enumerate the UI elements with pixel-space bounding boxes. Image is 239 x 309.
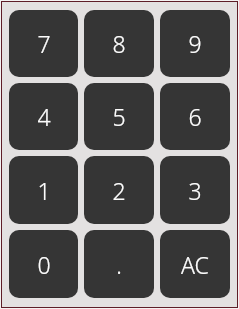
staticText: 6 (188, 101, 202, 132)
staticText: 1 (37, 175, 51, 206)
button[interactable]: 3 (160, 156, 230, 224)
staticText: 4 (37, 101, 51, 132)
staticText: 9 (188, 28, 202, 59)
button[interactable]: AC (160, 230, 230, 298)
staticText: 7 (37, 28, 51, 59)
staticText: . (116, 249, 122, 280)
staticText: AC (181, 249, 209, 280)
button[interactable]: 8 (84, 10, 154, 77)
staticText: 5 (112, 101, 126, 132)
button[interactable]: 7 (9, 10, 78, 77)
button[interactable]: . (84, 230, 154, 298)
button[interactable]: 6 (160, 83, 230, 150)
button[interactable]: 2 (84, 156, 154, 224)
button[interactable]: 0 (9, 230, 78, 298)
staticText: 8 (112, 28, 126, 59)
staticText: 2 (112, 175, 126, 206)
staticText: 0 (37, 249, 51, 280)
button[interactable]: 5 (84, 83, 154, 150)
button[interactable]: 4 (9, 83, 78, 150)
staticText: 3 (188, 175, 202, 206)
button[interactable]: 9 (160, 10, 230, 77)
button[interactable]: 1 (9, 156, 78, 224)
